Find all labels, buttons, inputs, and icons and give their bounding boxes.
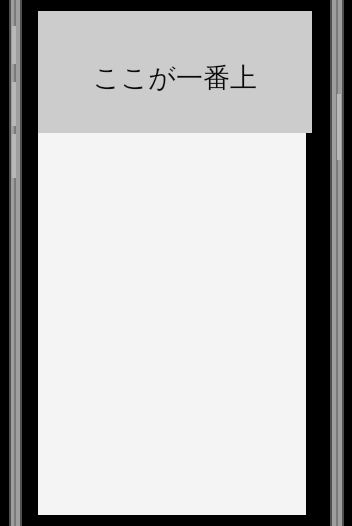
- staticText: ここが一番上: [93, 61, 257, 95]
- button[interactable]: ここが一番上: [38, 11, 312, 133]
